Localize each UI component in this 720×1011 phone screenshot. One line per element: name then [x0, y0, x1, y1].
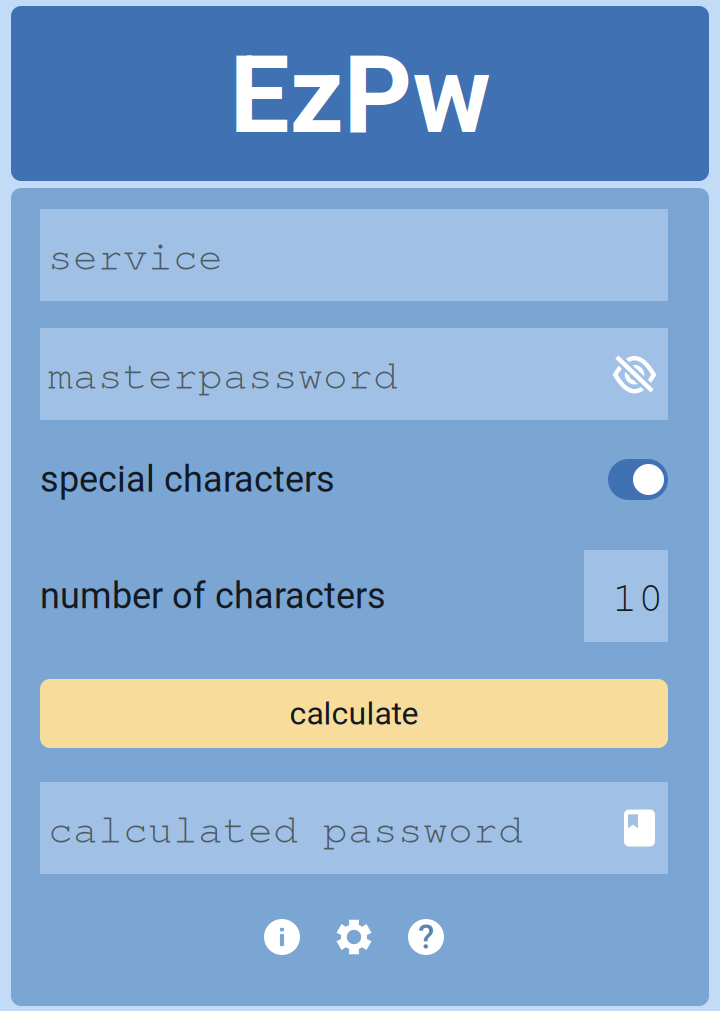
- staticText: special characters: [40, 458, 335, 501]
- button[interactable]: Settings: [336, 919, 372, 955]
- staticText: service: [48, 230, 223, 280]
- staticText: calculated password: [48, 803, 523, 853]
- staticText: EzPw: [229, 33, 490, 158]
- button[interactable]: masterpassword: [40, 328, 668, 420]
- button[interactable]: service: [40, 209, 668, 301]
- staticText: number of characters: [40, 575, 386, 617]
- staticText: masterpassword: [48, 349, 398, 399]
- button[interactable]: About: [264, 919, 300, 955]
- button[interactable]: calculate: [40, 679, 668, 748]
- staticText: ?: [418, 917, 434, 957]
- staticText: 10: [612, 570, 664, 622]
- button[interactable]: calculated password: [40, 782, 668, 874]
- button[interactable]: Special characters: [608, 459, 668, 500]
- button[interactable]: Help: [408, 919, 444, 955]
- button[interactable]: Number of characters: [584, 550, 668, 642]
- staticText: calculate: [289, 695, 418, 732]
